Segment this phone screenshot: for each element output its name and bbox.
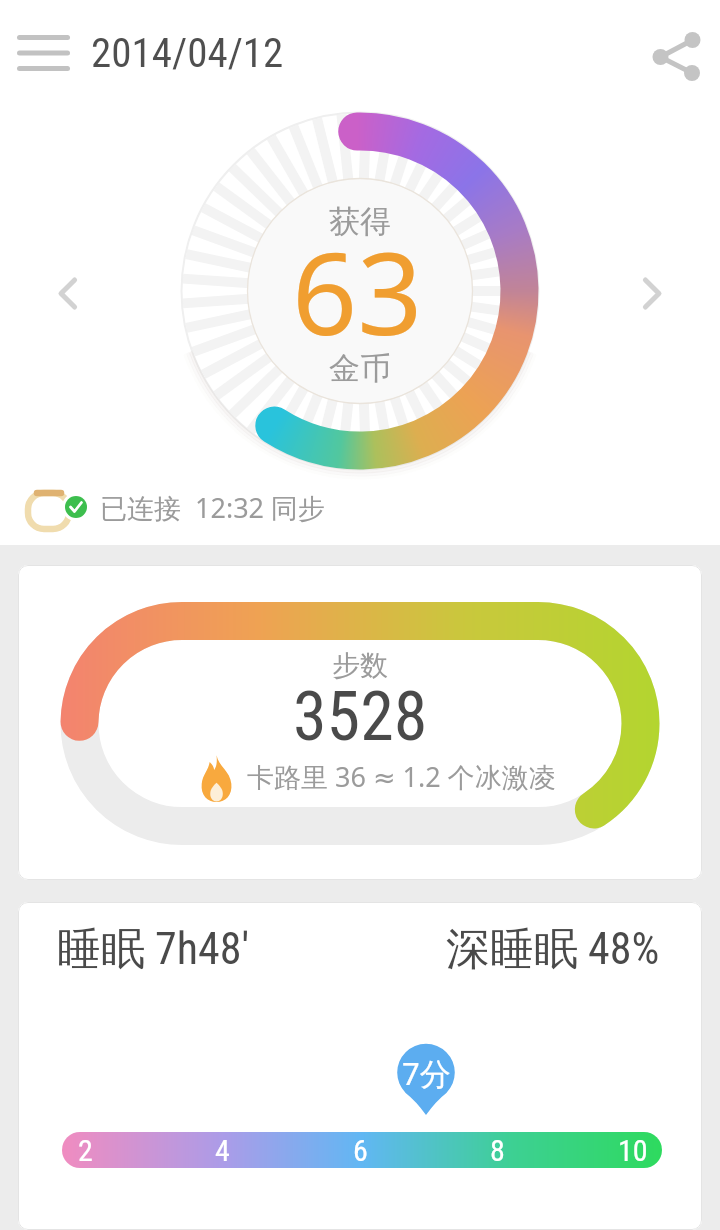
staticText: 3528 <box>293 677 428 757</box>
button[interactable] <box>622 258 682 328</box>
staticText: 睡眠 7h48′ <box>57 922 250 977</box>
staticText: 7分 <box>402 1052 451 1094</box>
staticText: 获得 <box>329 202 391 241</box>
staticText: 2 <box>78 1133 93 1168</box>
staticText: 步数 <box>332 648 388 683</box>
staticText: 卡路里 36 ≈ 1.2 个冰激凌 <box>247 758 556 795</box>
staticText: 深睡眠 48% <box>446 922 660 977</box>
button[interactable]: 已连接 12:32 同步 <box>20 480 360 534</box>
staticText: 6 <box>353 1133 368 1168</box>
staticText: 4 <box>215 1133 230 1168</box>
button[interactable]: 步数 <box>18 565 702 880</box>
button[interactable] <box>644 21 708 85</box>
button[interactable] <box>8 23 78 83</box>
staticText: 金币 <box>329 349 391 388</box>
staticText: 8 <box>490 1133 505 1168</box>
button[interactable]: 睡眠 7h48′ <box>18 902 702 1230</box>
staticText: 2014/04/12 <box>91 29 284 77</box>
staticText: 已连接 12:32 同步 <box>100 489 326 526</box>
button[interactable] <box>38 258 98 328</box>
staticText: 63 <box>292 213 423 353</box>
staticText: 10 <box>618 1133 648 1168</box>
